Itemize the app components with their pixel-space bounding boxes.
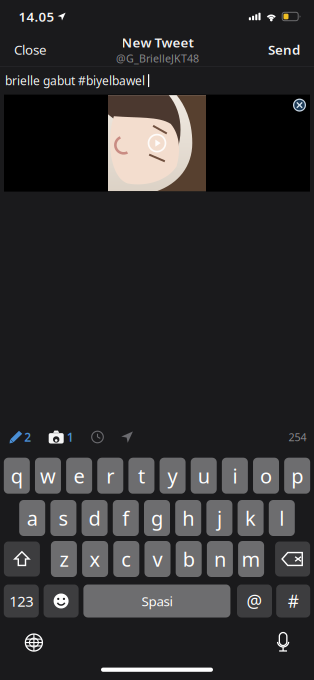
staticText: Close [14, 41, 47, 58]
staticText: g [151, 505, 163, 531]
button[interactable]: s [50, 500, 76, 536]
staticText: m [242, 546, 261, 572]
button[interactable]: x [82, 541, 108, 577]
staticText: 254 [288, 430, 306, 444]
staticText: b [183, 546, 195, 572]
button[interactable]: j [206, 500, 232, 536]
staticText: h [182, 505, 194, 531]
button[interactable]: Spasi [83, 584, 230, 617]
button[interactable]: n [207, 541, 233, 577]
staticText: Send [268, 41, 300, 58]
staticText: d [89, 505, 101, 531]
button[interactable]: r [97, 458, 123, 494]
button[interactable]: Media [49, 423, 74, 451]
button[interactable]: Emoji [44, 584, 79, 617]
staticText: v [152, 546, 162, 572]
staticText: t [138, 462, 145, 489]
button[interactable]: c [113, 541, 139, 577]
staticText: p [291, 462, 303, 489]
staticText: a [27, 505, 38, 531]
button[interactable]: Delete [275, 541, 310, 576]
button[interactable]: @ [237, 584, 272, 617]
staticText: c [121, 546, 131, 572]
staticText: 14.05 [19, 8, 55, 25]
button[interactable]: u [191, 458, 217, 494]
button[interactable]: a [19, 500, 45, 536]
staticText: l [279, 505, 284, 531]
button[interactable]: Dictate [273, 629, 293, 655]
staticText: brielle gabut #biyelbawel [5, 73, 145, 88]
staticText: 123 [9, 591, 33, 611]
staticText: q [11, 462, 23, 489]
staticText: # [288, 589, 299, 612]
button[interactable]: d [82, 500, 108, 536]
staticText: n [214, 546, 226, 572]
button[interactable]: Shift [4, 541, 40, 576]
staticText: w [40, 462, 56, 489]
button[interactable]: w [35, 458, 61, 494]
staticText: 2 [24, 429, 31, 445]
button[interactable]: g [144, 500, 170, 536]
button[interactable]: b [176, 541, 202, 577]
button[interactable]: Close [14, 35, 47, 64]
button[interactable]: Location [121, 425, 133, 449]
button[interactable]: e [66, 458, 92, 494]
staticText: New Tweet [121, 34, 193, 51]
button[interactable]: l [269, 500, 295, 536]
button[interactable]: Send [268, 35, 300, 64]
button[interactable]: Next keyboard [21, 629, 47, 655]
staticText: k [245, 505, 256, 531]
staticText: s [58, 505, 68, 531]
staticText: y [168, 462, 178, 489]
button[interactable]: p [284, 458, 310, 494]
staticText: @G_BrielleJKT48 [116, 51, 199, 65]
staticText: 1 [67, 429, 74, 445]
button[interactable]: h [175, 500, 201, 536]
staticText: u [198, 462, 210, 489]
button[interactable]: Draft [10, 423, 31, 451]
staticText: x [90, 546, 101, 572]
button[interactable]: i [222, 458, 248, 494]
staticText: j [217, 505, 222, 531]
button[interactable]: v [144, 541, 170, 577]
button[interactable]: o [253, 458, 279, 494]
button[interactable]: q [4, 458, 30, 494]
button[interactable]: t [128, 458, 154, 494]
button[interactable]: k [238, 500, 264, 536]
staticText: o [260, 462, 272, 489]
staticText: e [74, 462, 85, 489]
staticText: i [232, 462, 237, 489]
button[interactable]: z [51, 541, 77, 577]
staticText: r [106, 462, 114, 489]
staticText: Spasi [141, 592, 172, 610]
button[interactable]: Remove media [293, 95, 310, 112]
button[interactable]: 123 [4, 584, 39, 617]
staticText: @ [246, 589, 262, 612]
button[interactable]: y [160, 458, 186, 494]
staticText: f [122, 505, 129, 531]
staticText: z [59, 546, 68, 572]
button[interactable]: m [238, 541, 264, 577]
button[interactable]: f [113, 500, 139, 536]
button[interactable]: Schedule [92, 425, 103, 449]
button[interactable]: # [276, 584, 310, 617]
